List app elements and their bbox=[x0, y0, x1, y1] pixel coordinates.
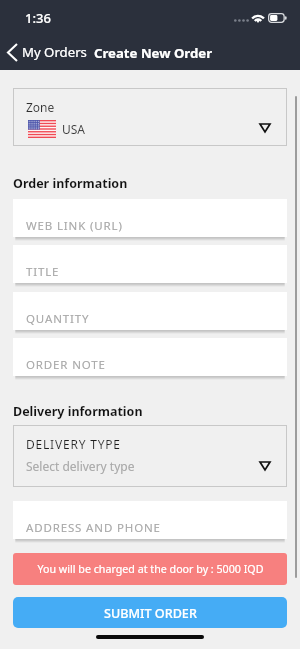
staticText: QUANTITY bbox=[26, 311, 90, 327]
button[interactable]: TITLE bbox=[13, 245, 287, 287]
button[interactable]: ORDER NOTE bbox=[13, 338, 287, 380]
staticText: Create New Order bbox=[94, 44, 213, 62]
staticText: TITLE bbox=[26, 264, 60, 280]
button[interactable]: Zone bbox=[13, 88, 287, 146]
staticText: 1:36 bbox=[25, 9, 51, 27]
staticText: WEB LINK (URL) bbox=[26, 218, 123, 234]
button[interactable]: QUANTITY bbox=[13, 292, 287, 334]
button[interactable]: DELIVERY TYPE bbox=[13, 425, 287, 487]
button[interactable]: SUBMIT ORDER bbox=[13, 597, 287, 628]
button[interactable]: ADDRESS AND PHONE bbox=[13, 501, 287, 543]
button[interactable]: My Orders bbox=[0, 36, 92, 70]
button[interactable]: You will be charged at the door by : 500… bbox=[13, 553, 287, 585]
staticText: Delivery information bbox=[13, 403, 143, 420]
staticText: My Orders bbox=[22, 43, 87, 61]
staticText: Order information bbox=[13, 175, 128, 192]
staticText: Zone bbox=[26, 99, 55, 115]
staticText: DELIVERY TYPE bbox=[26, 436, 121, 452]
staticText: ORDER NOTE bbox=[26, 357, 106, 373]
staticText: ADDRESS AND PHONE bbox=[26, 520, 161, 536]
staticText: USA bbox=[62, 121, 86, 137]
staticText: Select delivery type bbox=[26, 458, 135, 474]
button[interactable]: WEB LINK (URL) bbox=[13, 199, 287, 241]
staticText: SUBMIT ORDER bbox=[104, 605, 197, 622]
staticText: You will be charged at the door by : 500… bbox=[37, 562, 264, 577]
